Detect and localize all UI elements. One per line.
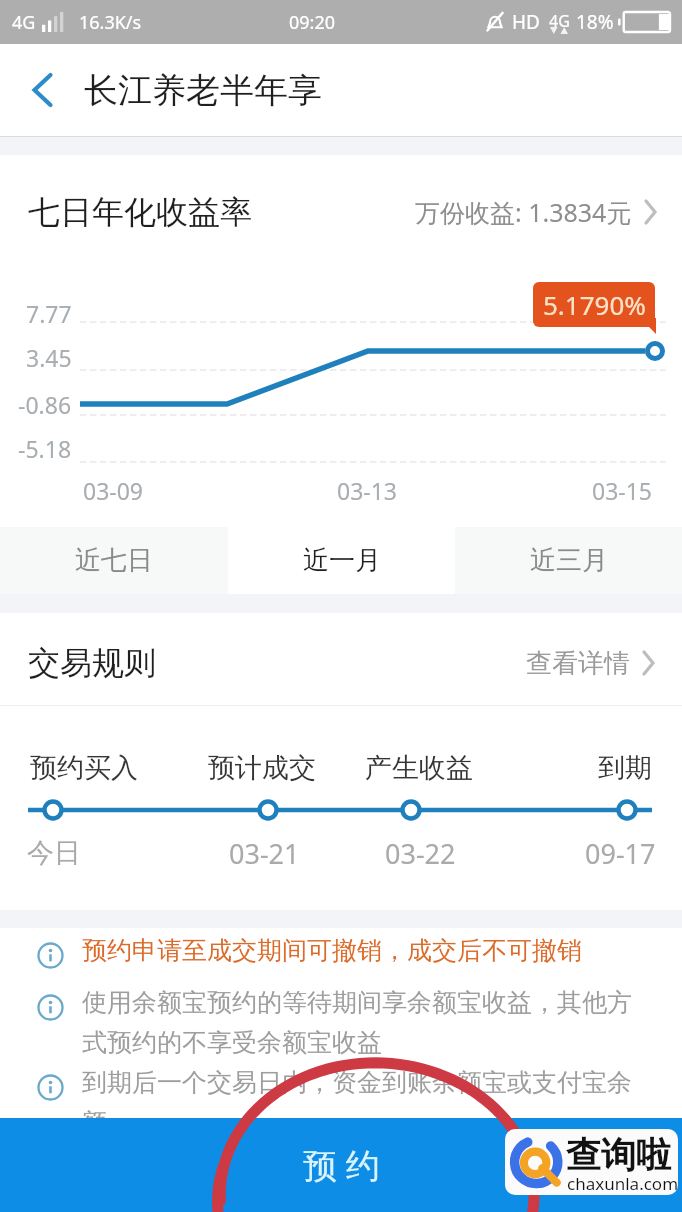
- staticText: chaxunla.com: [567, 1172, 678, 1195]
- staticText: 3.45: [26, 342, 72, 372]
- staticText: 长江养老半年享: [84, 69, 322, 112]
- staticText: 16.3K/s: [79, 10, 142, 35]
- button[interactable]: Back: [0, 44, 84, 136]
- staticText: 预计成交: [208, 751, 316, 785]
- staticText: -5.18: [18, 433, 72, 463]
- staticText: 近七日: [75, 544, 153, 577]
- staticText: 09-17: [585, 835, 656, 872]
- staticText: 到期: [598, 751, 652, 785]
- staticText: 到期后一个交易日内，资金到账余额宝或支付宝余额: [82, 1067, 650, 1138]
- staticText: 03-21: [229, 835, 300, 872]
- staticText: 今日: [27, 836, 81, 870]
- staticText: 7.77: [26, 298, 72, 328]
- staticText: 近三月: [530, 544, 608, 577]
- staticText: 预约申请至成交期间可撤销，成交后不可撤销: [82, 935, 582, 966]
- staticText: 七日年化收益率: [28, 192, 252, 232]
- staticText: 18%: [576, 9, 614, 35]
- staticText: 03-09: [83, 475, 144, 505]
- staticText: 09:20: [289, 10, 336, 35]
- staticText: 5.1790%: [543, 287, 646, 322]
- staticText: 03-13: [337, 475, 398, 505]
- staticText: 预约买入: [30, 751, 138, 785]
- button[interactable]: 交易规则: [0, 613, 682, 705]
- staticText: 交易规则: [28, 643, 156, 683]
- staticText: 查询啦: [566, 1133, 671, 1177]
- staticText: 4G: [549, 10, 570, 32]
- staticText: HD: [512, 9, 540, 35]
- staticText: 产生收益: [365, 751, 473, 785]
- button[interactable]: 近七日: [0, 527, 228, 594]
- button[interactable]: 七日年化收益率: [0, 155, 682, 257]
- button[interactable]: 近三月: [455, 527, 682, 594]
- button[interactable]: 近一月: [228, 527, 455, 594]
- staticText: 万份收益: 1.3834元: [415, 195, 632, 229]
- staticText: 预 约: [303, 1142, 380, 1188]
- staticText: -0.86: [18, 389, 72, 419]
- staticText: 近一月: [303, 544, 381, 577]
- staticText: 查看详情: [526, 647, 630, 680]
- staticText: 03-22: [385, 835, 456, 872]
- staticText: 03-15: [592, 475, 653, 505]
- staticText: 使用余额宝预约的等待期间享余额宝收益，其他方式预约的不享受余额宝收益: [82, 987, 650, 1058]
- button[interactable]: 预 约: [0, 1118, 682, 1212]
- staticText: 4G: [12, 10, 36, 35]
